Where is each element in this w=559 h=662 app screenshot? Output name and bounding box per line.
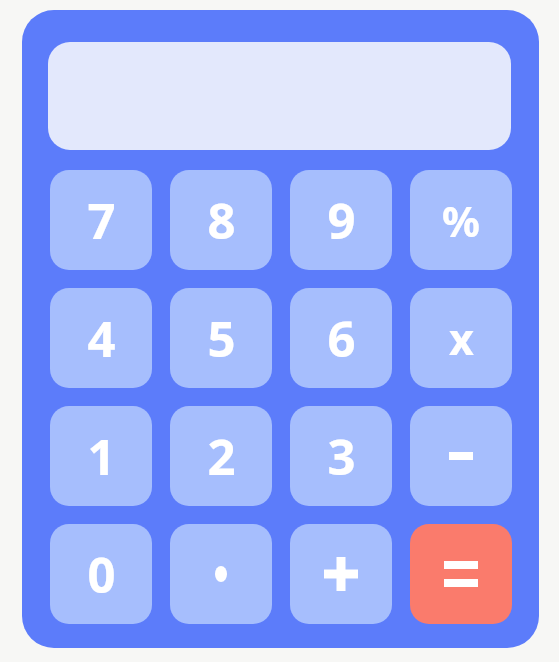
staticText: 4 [87, 305, 116, 372]
staticText: 2 [207, 423, 236, 490]
staticText: 0 [87, 541, 116, 608]
button[interactable]: 7 [50, 170, 152, 270]
button[interactable]: Decimal point [170, 524, 272, 624]
staticText: % [442, 192, 480, 249]
staticText: x [449, 309, 474, 368]
button[interactable]: 5 [170, 288, 272, 388]
button[interactable]: Minus [410, 406, 512, 506]
button[interactable]: 9 [290, 170, 392, 270]
button[interactable]: Multiply [410, 288, 512, 388]
button[interactable]: 8 [170, 170, 272, 270]
staticText: 8 [207, 187, 236, 254]
staticText: 9 [327, 187, 356, 254]
button[interactable]: 2 [170, 406, 272, 506]
button[interactable]: Plus [290, 524, 392, 624]
staticText: 5 [207, 305, 236, 372]
button[interactable]: Percent [410, 170, 512, 270]
staticText: 7 [87, 187, 116, 254]
button[interactable]: 6 [290, 288, 392, 388]
button[interactable]: 4 [50, 288, 152, 388]
staticText: 1 [87, 423, 116, 490]
button[interactable]: Display [48, 42, 511, 150]
staticText: 6 [327, 305, 356, 372]
button[interactable]: 3 [290, 406, 392, 506]
button[interactable]: Equals [410, 524, 512, 624]
button[interactable]: 0 [50, 524, 152, 624]
staticText: 3 [327, 423, 356, 490]
button[interactable]: 1 [50, 406, 152, 506]
